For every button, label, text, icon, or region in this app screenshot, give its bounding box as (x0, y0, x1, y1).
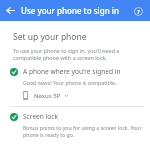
staticText: Use your phone to sign in (21, 5, 119, 16)
staticText: ? (137, 8, 140, 16)
staticText: Screen lock (23, 112, 58, 121)
button[interactable]: Screen lock (0, 112, 150, 121)
button[interactable]: A phone where you're signed in (0, 67, 150, 76)
staticText: Nexus 5P (34, 92, 61, 100)
button[interactable]: Nexus 5P (22, 90, 70, 101)
staticText: A phone where you're signed in (23, 67, 121, 76)
button[interactable]: Help (131, 4, 145, 18)
staticText: Bonus points to you for using a screen l… (23, 124, 143, 138)
staticText: Good news! Your phone is compatible. (23, 79, 117, 86)
staticText: Set up your phone (13, 31, 87, 43)
button[interactable]: Back (3, 3, 18, 18)
staticText: To use your phone to sign in, you'll nee… (13, 47, 143, 61)
